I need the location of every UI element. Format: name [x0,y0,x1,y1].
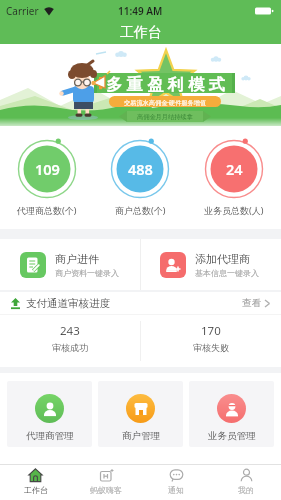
button[interactable]: 通知 [141,465,211,500]
staticText: 审核失败 [193,342,229,353]
staticText: Carrier [6,4,39,18]
staticText: 商户资料一键录入 [55,268,119,278]
staticText: 商户管理 [122,430,160,442]
button[interactable]: 488 [93,138,187,216]
button[interactable]: 商户管理 [98,381,183,447]
staticText: 代理商管理 [26,430,74,442]
button[interactable]: 多重盈利模式 [0,44,281,132]
button[interactable]: 我的 [211,465,281,500]
button[interactable]: 添加代理商 [141,239,281,290]
staticText: 业务员管理 [208,430,256,442]
staticText: 243 [60,323,80,339]
staticText: 工作台 [120,24,162,42]
staticText: 蚂蚁嗨客 [90,485,122,495]
staticText: 170 [201,323,221,339]
staticText: 我的 [238,485,254,495]
button[interactable]: 支付通道审核进度 [0,292,281,314]
staticText: 通知 [168,485,184,495]
staticText: 109 [35,159,60,179]
staticText: 基本信息一键录入 [195,268,259,278]
staticText: 488 [128,159,153,179]
staticText: 商户进件 [55,252,99,266]
staticText: 工作台 [24,485,48,495]
button[interactable]: 工作台 [0,465,71,500]
button[interactable]: 24 [187,138,281,216]
staticText: 代理商总数(个) [17,204,77,216]
staticText: 业务员总数(人) [204,204,264,216]
button[interactable]: 业务员管理 [189,381,274,447]
staticText: 商户总数(个) [115,204,166,216]
button[interactable]: 蚂蚁嗨客 [71,465,141,500]
staticText: 支付通道审核进度 [26,297,110,310]
staticText: 查看 [242,297,261,309]
staticText: 添加代理商 [195,252,250,266]
staticText: 交易流水高佣金·硬件服务增值 [124,98,207,106]
staticText: 审核成功 [52,342,88,353]
staticText: 11:49 AM [118,4,163,18]
staticText: 多重盈利模式 [104,75,227,95]
button[interactable]: 109 [0,138,93,216]
button[interactable]: 商户进件 [0,239,140,290]
button[interactable]: 代理商管理 [7,381,92,447]
staticText: 高佣金月月结持续拿 [137,113,193,121]
staticText: 24 [226,159,243,179]
